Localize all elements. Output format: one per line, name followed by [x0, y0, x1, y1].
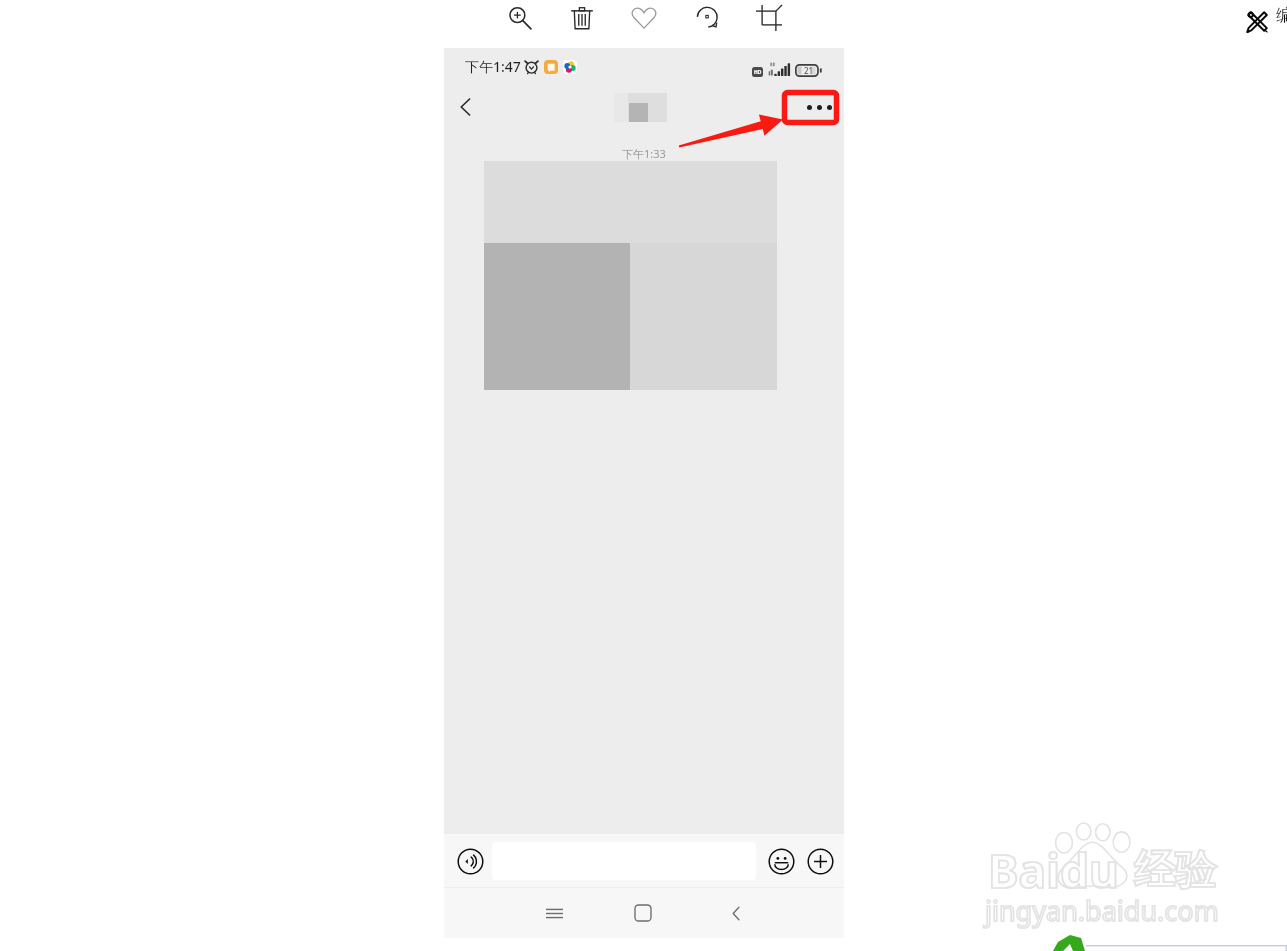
- button[interactable]: Home: [621, 891, 665, 935]
- button[interactable]: Crop: [747, 0, 791, 40]
- staticText: HD: [754, 69, 762, 76]
- button[interactable]: Favourite: [622, 0, 666, 40]
- button[interactable]: Recent apps: [532, 891, 576, 935]
- button[interactable]: Back: [714, 891, 758, 935]
- staticText: 编辑: [1276, 5, 1287, 26]
- button[interactable]: Voice message: [454, 845, 486, 877]
- button[interactable]: Zoom in: [498, 0, 542, 40]
- button[interactable]: More: [804, 845, 836, 877]
- button[interactable]: More options: [790, 90, 838, 124]
- staticText: 21: [804, 65, 814, 76]
- staticText: Baidu: [988, 839, 1119, 902]
- button[interactable]: Back: [449, 90, 483, 124]
- button[interactable]: Rotate: [685, 0, 729, 40]
- staticText: 经验: [1134, 845, 1216, 897]
- staticText: 下午1:47: [465, 57, 521, 76]
- staticText: jingyan.baidu.com: [985, 892, 1219, 929]
- button[interactable]: Edit: [1239, 3, 1275, 39]
- button[interactable]: Delete: [560, 0, 604, 40]
- staticText: 下午1:33: [622, 146, 666, 161]
- button[interactable]: Emoji: [765, 845, 797, 877]
